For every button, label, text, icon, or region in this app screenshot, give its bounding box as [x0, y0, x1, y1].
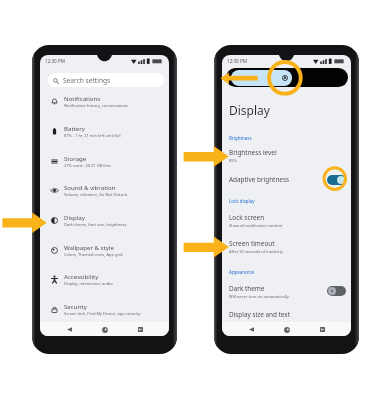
staticText: Battery [64, 124, 85, 132]
staticText: Lock screen [229, 213, 265, 222]
staticText: Dark theme, font size, brightness [64, 222, 127, 227]
button[interactable]: Display [40, 205, 169, 235]
staticText: Display [64, 213, 85, 221]
button[interactable]: Display size and text [222, 310, 351, 321]
staticText: Dark theme [229, 284, 265, 293]
button[interactable]: Home [98, 323, 111, 336]
button[interactable]: Battery [40, 116, 169, 146]
staticText: 12:30 PM [45, 58, 65, 64]
staticText: 27% used - 20.21 GB free [64, 163, 111, 168]
button[interactable]: Wallpaper & style [40, 235, 169, 265]
button[interactable]: Recent apps [134, 323, 147, 336]
staticText: Lock display [229, 198, 255, 204]
button[interactable] [226, 68, 348, 87]
staticText: 12:30 PM [227, 58, 247, 64]
button[interactable]: Back [63, 323, 76, 336]
staticText: Display, interaction, audio [64, 281, 113, 286]
staticText: Notifications [64, 94, 101, 102]
staticText: Show all notification content [229, 223, 283, 228]
staticText: Display size and text [229, 310, 291, 319]
button[interactable]: Storage [40, 146, 169, 176]
button[interactable]: Security [40, 294, 169, 324]
button[interactable]: Turn off [327, 175, 346, 185]
staticText: Wallpaper & style [64, 243, 114, 251]
staticText: Screen lock, Find My Device, app securit… [64, 311, 141, 316]
button[interactable]: Adaptive brightness [222, 174, 351, 185]
button[interactable]: Brightness level [222, 148, 351, 164]
staticText: After 30 seconds of inactivity [229, 249, 283, 254]
button[interactable]: Search settings [48, 73, 164, 87]
staticText: Search settings [63, 76, 111, 85]
staticText: Colors, Themed icons, App grid [64, 252, 123, 257]
staticText: Display [229, 102, 270, 118]
button[interactable]: Notifications [40, 86, 169, 116]
button[interactable]: Turn on [327, 286, 346, 296]
button[interactable]: Back [245, 323, 258, 336]
button[interactable]: Home [280, 323, 293, 336]
staticText: Storage [64, 154, 87, 162]
staticText: Volume, vibration, Do Not Disturb [64, 192, 128, 197]
button[interactable]: Lock screen [222, 213, 351, 229]
button[interactable]: Accessibility [40, 264, 169, 294]
button[interactable]: Dark theme [222, 283, 351, 299]
staticText: Accessibility [64, 272, 99, 280]
staticText: Brightness level [229, 148, 277, 157]
staticText: 87% - 1 hr, 21 min left until full [64, 133, 121, 138]
staticText: Adaptive brightness [229, 175, 290, 184]
staticText: 85% [229, 158, 237, 163]
button[interactable]: Screen timeout [222, 239, 351, 255]
staticText: Will never turn on automatically [229, 294, 289, 299]
staticText: Appearance [229, 269, 255, 275]
staticText: Screen timeout [229, 239, 275, 248]
staticText: Sound & vibration [64, 183, 116, 191]
button[interactable]: Sound & vibration [40, 175, 169, 205]
button[interactable]: Recent apps [316, 323, 329, 336]
staticText: Brightness [229, 135, 252, 141]
staticText: Security [64, 302, 87, 310]
staticText: Notification history, conversations [64, 103, 129, 108]
